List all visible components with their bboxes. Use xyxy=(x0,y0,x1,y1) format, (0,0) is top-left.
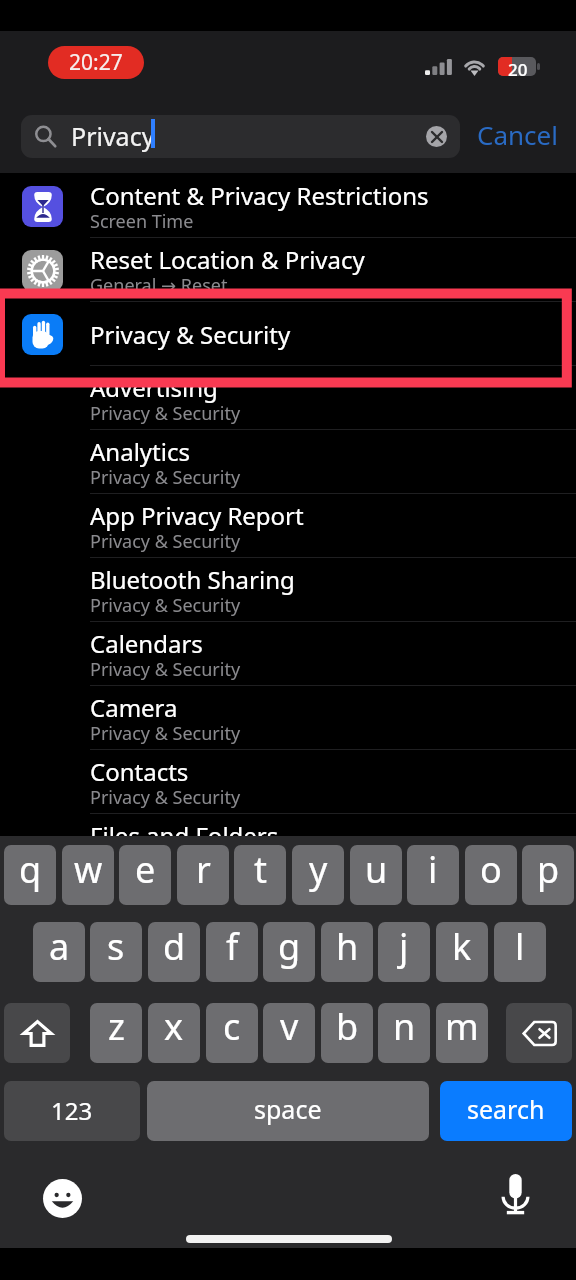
staticText: Advertising xyxy=(90,371,218,404)
button[interactable]: q xyxy=(4,845,56,905)
button[interactable]: 123 xyxy=(4,1081,140,1141)
button[interactable]: Content & Privacy Restrictions xyxy=(0,174,576,238)
button[interactable]: x xyxy=(148,1003,200,1063)
staticText: j xyxy=(399,922,409,971)
button[interactable]: r xyxy=(177,845,229,905)
button[interactable]: Emoji keyboard xyxy=(42,1178,82,1218)
staticText: s xyxy=(107,922,125,971)
staticText: Privacy & Security xyxy=(90,657,241,682)
staticText: a xyxy=(49,922,70,971)
staticText: p xyxy=(537,845,560,894)
button[interactable]: v xyxy=(263,1003,315,1063)
staticText: o xyxy=(480,845,502,894)
button[interactable]: Reset Location & Privacy xyxy=(0,238,576,302)
button[interactable]: Advertising xyxy=(0,366,576,430)
staticText: u xyxy=(365,845,388,894)
button[interactable]: j xyxy=(378,922,430,982)
staticText: 20 xyxy=(508,58,528,76)
staticText: f xyxy=(226,922,239,971)
button[interactable]: Dictation xyxy=(490,1169,540,1221)
button[interactable]: n xyxy=(378,1003,430,1063)
staticText: Privacy & Security xyxy=(90,318,291,351)
staticText: k xyxy=(452,922,472,971)
button[interactable]: a xyxy=(33,922,85,982)
button[interactable]: Clear text xyxy=(426,126,447,147)
staticText: space xyxy=(254,1092,322,1126)
staticText: Privacy & Security xyxy=(90,593,241,618)
button[interactable]: w xyxy=(62,845,114,905)
staticText: c xyxy=(223,1003,241,1051)
staticText: Privacy & Security xyxy=(90,849,241,874)
staticText: l xyxy=(515,922,525,971)
staticText: Calendars xyxy=(90,627,203,660)
button[interactable]: Privacy & Security xyxy=(0,302,576,366)
button[interactable]: Analytics xyxy=(0,430,576,494)
staticText: y xyxy=(309,845,328,894)
staticText: Files and Folders xyxy=(90,819,279,852)
staticText: Privacy & Security xyxy=(90,785,241,810)
staticText: e xyxy=(135,845,156,894)
staticText: b xyxy=(336,1003,359,1051)
staticText: search xyxy=(467,1092,545,1126)
button[interactable]: Privacy xyxy=(21,115,460,158)
button[interactable]: t xyxy=(234,845,286,905)
staticText: v xyxy=(280,1003,299,1051)
staticText: w xyxy=(74,845,103,894)
staticText: m xyxy=(445,1003,479,1051)
button[interactable]: k xyxy=(436,922,488,982)
button[interactable]: Calendars xyxy=(0,622,576,686)
staticText: i xyxy=(428,845,438,894)
button[interactable]: o xyxy=(465,845,517,905)
button[interactable]: i xyxy=(407,845,459,905)
button[interactable]: Bluetooth Sharing xyxy=(0,558,576,622)
staticText: Privacy & Security xyxy=(90,529,241,554)
button[interactable]: space xyxy=(147,1081,429,1141)
button[interactable]: f xyxy=(206,922,258,982)
button[interactable]: c xyxy=(206,1003,258,1063)
staticText: Cancel xyxy=(477,117,558,152)
button[interactable]: b xyxy=(321,1003,373,1063)
button[interactable]: d xyxy=(148,922,200,982)
staticText: t xyxy=(254,845,267,894)
button[interactable]: h xyxy=(321,922,373,982)
button[interactable]: s xyxy=(90,922,142,982)
button[interactable]: search xyxy=(440,1081,572,1141)
button[interactable]: m xyxy=(436,1003,488,1063)
staticText: Bluetooth Sharing xyxy=(90,563,295,596)
button[interactable]: Files and Folders xyxy=(0,814,576,874)
button[interactable]: y xyxy=(292,845,344,905)
staticText: Screen Time xyxy=(90,209,194,234)
button[interactable]: Cancel xyxy=(473,115,562,158)
button[interactable]: Shift xyxy=(4,1003,70,1063)
button[interactable]: z xyxy=(90,1003,142,1063)
staticText: Contacts xyxy=(90,755,189,788)
button[interactable]: p xyxy=(522,845,574,905)
staticText: Analytics xyxy=(90,435,190,468)
button[interactable]: l xyxy=(494,922,546,982)
staticText: 123 xyxy=(51,1094,93,1127)
staticText: q xyxy=(19,845,42,894)
staticText: Content & Privacy Restrictions xyxy=(90,179,429,212)
button[interactable]: e xyxy=(119,845,171,905)
staticText: General → Reset xyxy=(90,273,228,298)
staticText: z xyxy=(108,1003,125,1051)
button[interactable]: u xyxy=(350,845,402,905)
staticText: r xyxy=(196,845,211,894)
button[interactable]: Contacts xyxy=(0,750,576,814)
staticText: Reset Location & Privacy xyxy=(90,243,365,276)
staticText: 20:27 xyxy=(69,48,123,77)
staticText: Privacy & Security xyxy=(90,721,241,746)
staticText: n xyxy=(393,1003,416,1051)
staticText: h xyxy=(336,922,359,971)
button[interactable]: Backspace xyxy=(506,1003,572,1063)
staticText: Privacy & Security xyxy=(90,465,241,490)
staticText: x xyxy=(164,1003,184,1051)
button[interactable]: g xyxy=(263,922,315,982)
staticText: Camera xyxy=(90,691,178,724)
staticText: d xyxy=(163,922,186,971)
staticText: g xyxy=(278,922,301,971)
button[interactable]: App Privacy Report xyxy=(0,494,576,558)
staticText: Privacy & Security xyxy=(90,401,241,426)
button[interactable]: Camera xyxy=(0,686,576,750)
staticText: App Privacy Report xyxy=(90,499,304,532)
